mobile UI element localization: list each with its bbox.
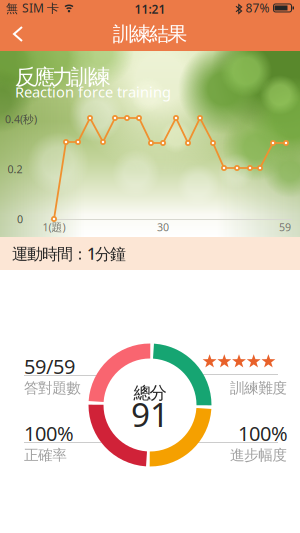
staticText: 正確率 <box>24 446 67 464</box>
staticText: 總分 <box>134 382 166 404</box>
staticText: 100% <box>24 420 74 447</box>
staticText: 87% <box>245 0 269 16</box>
staticText: 0.2 <box>7 162 22 176</box>
staticText: 30 <box>157 220 169 234</box>
staticText: 59/59 <box>24 353 75 380</box>
staticText: 91 <box>131 392 169 436</box>
staticText: 0.4(秒) <box>5 112 37 126</box>
staticText: 運動時間：1分鐘 <box>12 243 126 264</box>
staticText: 100% <box>238 420 288 447</box>
staticText: 訓練結果 <box>113 22 187 46</box>
staticText: 無 SIM 卡 <box>6 0 59 16</box>
staticText: 1(題) <box>42 220 65 234</box>
staticText: 進步幅度 <box>230 446 287 464</box>
staticText: 11:21 <box>134 1 165 17</box>
staticText: 59 <box>279 220 291 234</box>
staticText: 反應力訓練 <box>15 64 110 90</box>
staticText: 答對題數 <box>24 379 81 397</box>
button[interactable]: Back <box>3 19 33 49</box>
staticText: 訓練難度 <box>230 379 287 397</box>
staticText: 0 <box>17 212 23 226</box>
staticText: Reaction force training <box>15 82 171 101</box>
